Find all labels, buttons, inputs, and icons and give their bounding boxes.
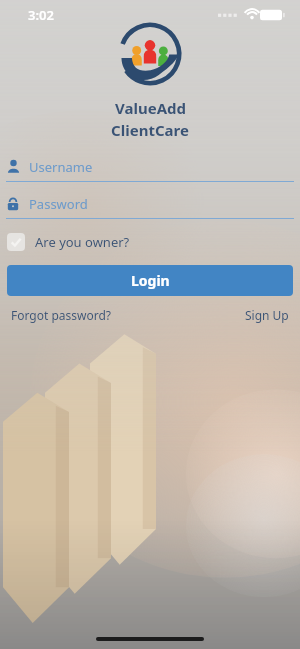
- staticText: ClientCare: [111, 120, 189, 140]
- staticText: Sign Up: [245, 307, 289, 323]
- button[interactable]: Are you owner?: [7, 231, 130, 253]
- staticText: Login: [131, 271, 170, 290]
- staticText: Forgot password?: [11, 307, 112, 323]
- staticText: Password: [29, 195, 88, 213]
- button[interactable]: Forgot password?: [11, 307, 112, 323]
- button[interactable]: Login: [7, 265, 293, 296]
- button[interactable]: Sign Up: [245, 307, 289, 323]
- staticText: Username: [29, 158, 93, 176]
- button[interactable]: Username: [6, 152, 294, 181]
- staticText: Are you owner?: [35, 233, 130, 251]
- staticText: ValueAdd: [115, 98, 186, 118]
- staticText: 3:02: [28, 6, 54, 24]
- button[interactable]: Password: [6, 189, 294, 218]
